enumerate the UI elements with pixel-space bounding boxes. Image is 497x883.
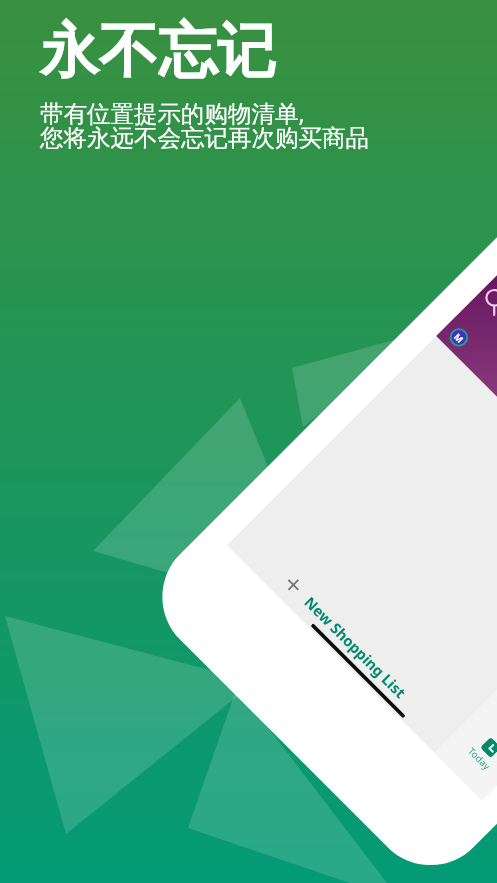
staticText: 带有位置提示的购物清单, 您将永远不会忘记再次购买商品 — [40, 97, 369, 153]
button[interactable]: Search — [476, 279, 497, 316]
staticText: Today — [465, 745, 493, 773]
staticText: M — [452, 330, 467, 345]
button[interactable]: Today — [461, 728, 497, 776]
staticText: 永不忘记 — [40, 14, 276, 88]
button[interactable]: Add list — [283, 575, 303, 595]
staticText: New Shopping List — [300, 592, 411, 702]
button[interactable]: Account — [446, 325, 472, 350]
